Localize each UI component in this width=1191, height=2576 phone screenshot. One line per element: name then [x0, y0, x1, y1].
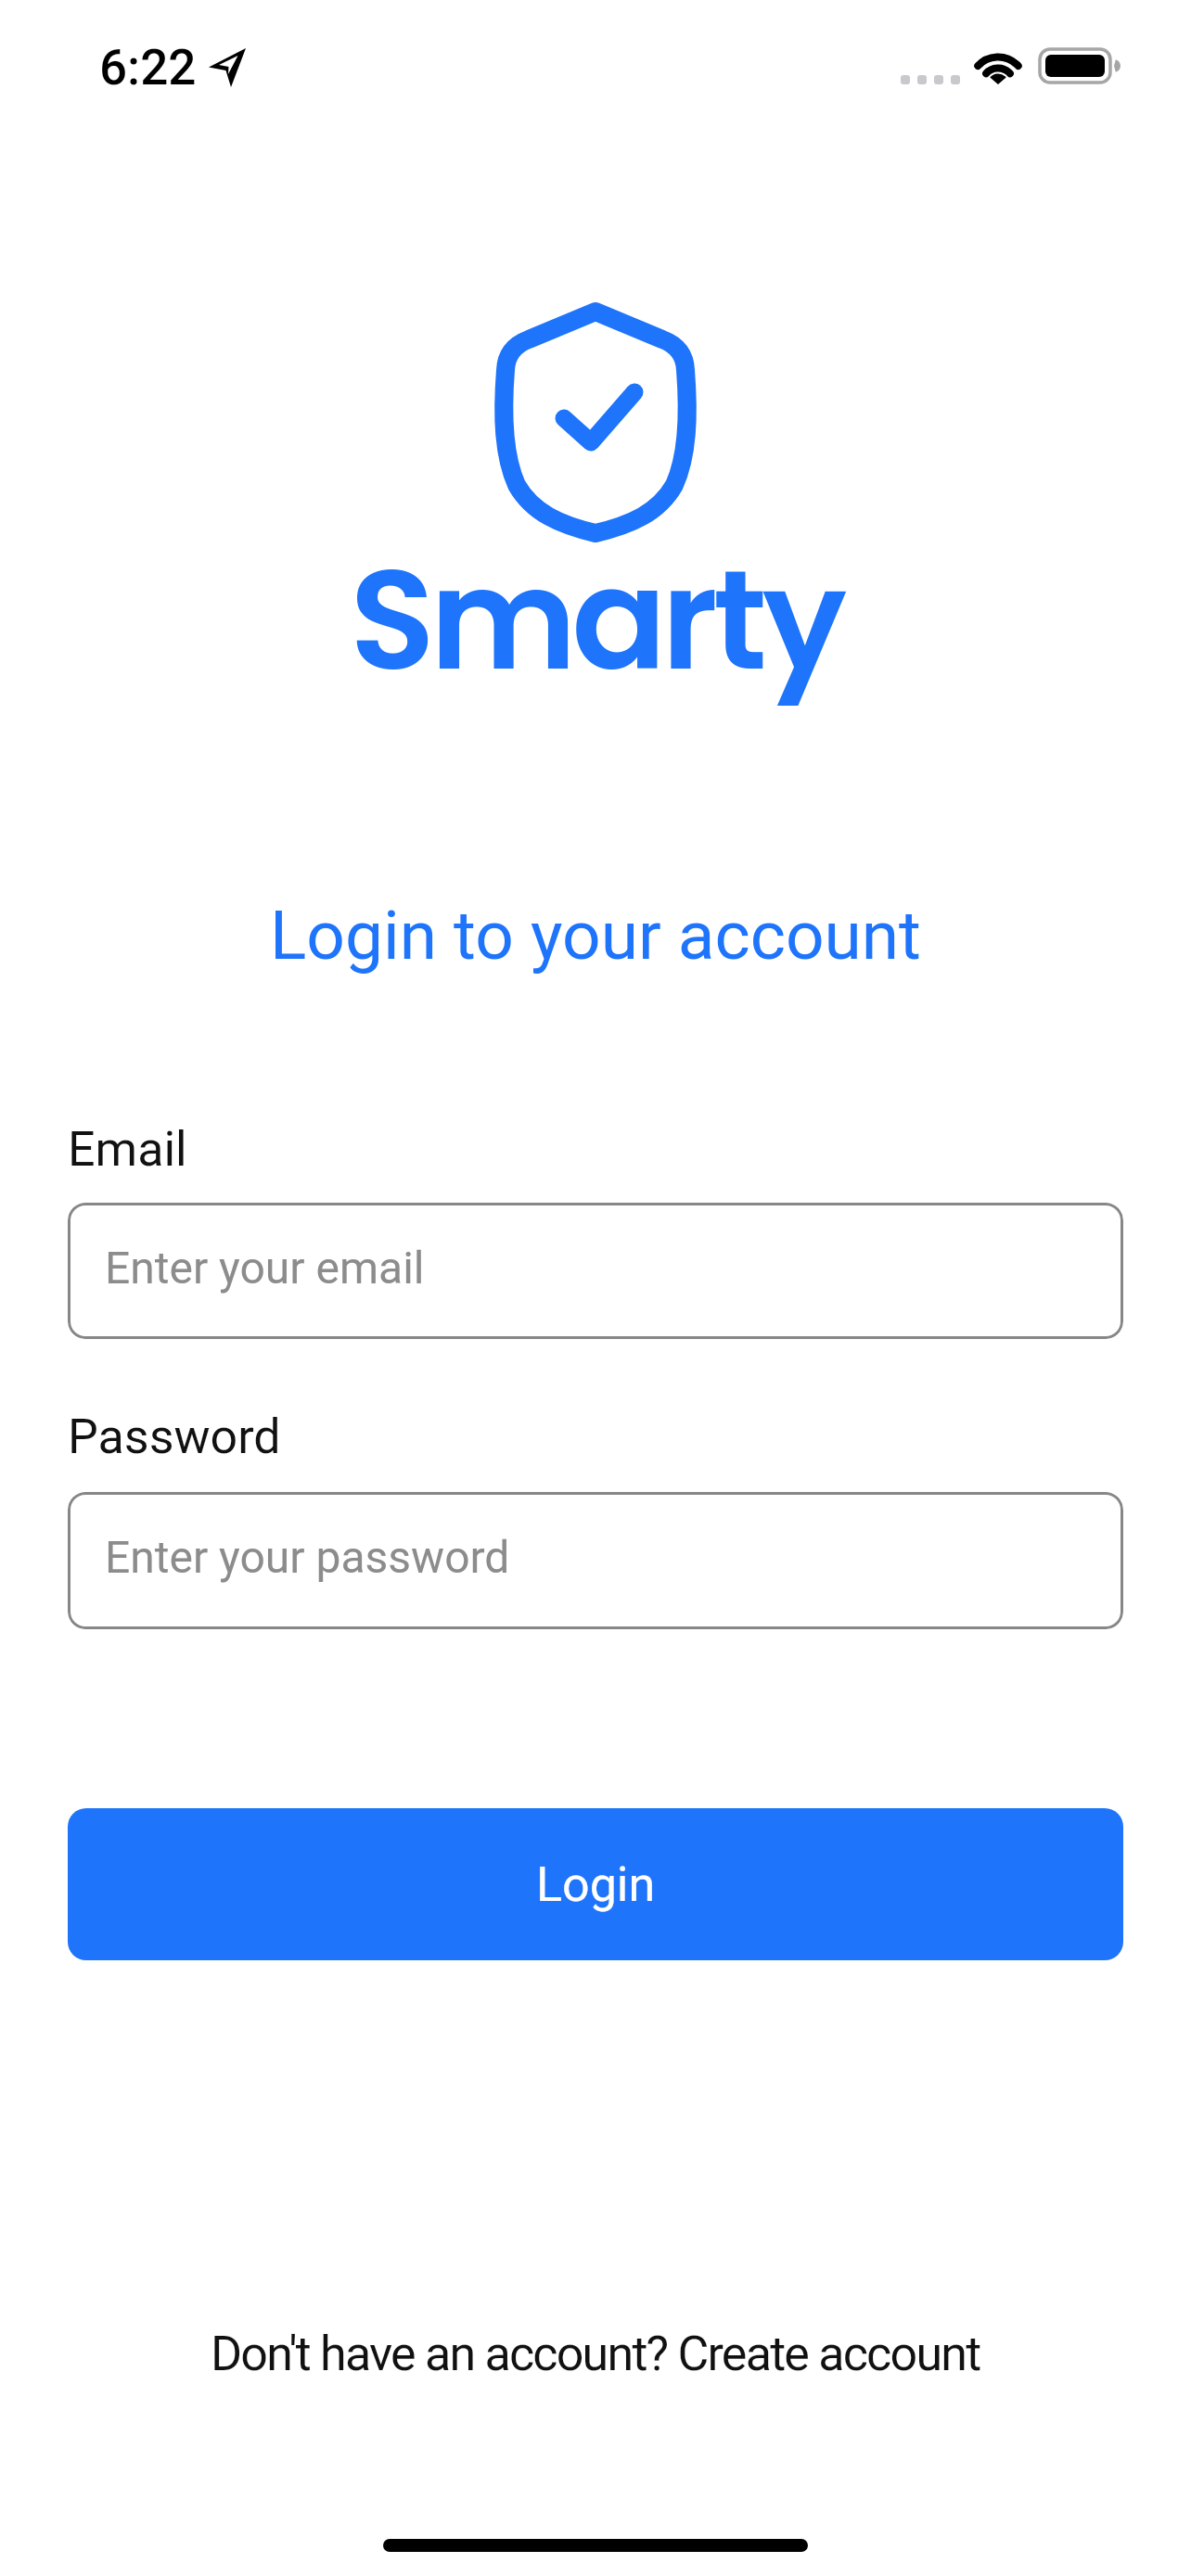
- staticText: Login to your account: [270, 896, 921, 976]
- staticText: Smarty: [350, 521, 842, 717]
- button[interactable]: Login: [68, 1808, 1123, 1960]
- staticText: Don't have an account? Create account: [211, 2326, 980, 2382]
- staticText: Login: [536, 1856, 656, 1913]
- staticText: Email: [68, 1121, 187, 1178]
- button[interactable]: Enter your email: [68, 1203, 1123, 1339]
- button[interactable]: Don't have an account? Create account: [0, 2326, 1191, 2382]
- staticText: 6:22: [99, 39, 197, 96]
- staticText: Enter your password: [105, 1531, 510, 1583]
- staticText: Password: [68, 1409, 281, 1465]
- button[interactable]: Enter your password: [68, 1492, 1123, 1629]
- staticText: Enter your email: [105, 1242, 425, 1294]
